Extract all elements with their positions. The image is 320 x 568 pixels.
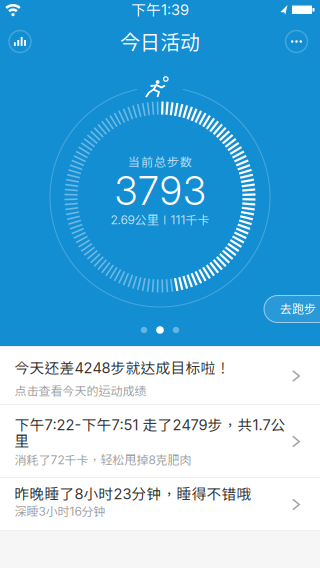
- button[interactable]: 下午7:22-下午7:51 走了2479步，共1.7公: [0, 405, 320, 477]
- staticText: 深睡3小时16分钟: [14, 504, 105, 519]
- staticText: 3793: [115, 168, 205, 214]
- button[interactable]: [6, 28, 33, 55]
- staticText: 消耗了72千卡，轻松甩掉8克肥肉: [14, 453, 191, 467]
- button[interactable]: 去跑步: [264, 295, 320, 322]
- staticText: 当前总步数: [128, 155, 192, 169]
- button[interactable]: [283, 28, 310, 55]
- button[interactable]: 昨晚睡了8小时23分钟，睡得不错哦: [0, 478, 320, 530]
- staticText: 2.69公里 111千卡: [110, 213, 209, 227]
- staticText: 今日活动: [120, 30, 200, 53]
- staticText: 里: [14, 433, 29, 449]
- staticText: 下午1:39: [131, 1, 189, 19]
- button[interactable]: 今天还差4248步就达成目标啦！: [0, 347, 320, 404]
- staticText: 下午7:22-下午7:51 走了2479步，共1.7公: [14, 416, 285, 434]
- staticText: 昨晚睡了8小时23分钟，睡得不错哦: [14, 485, 251, 503]
- staticText: 今天还差4248步就达成目标啦！: [14, 359, 230, 377]
- staticText: 点击查看今天的运动成绩: [14, 384, 146, 398]
- staticText: 去跑步: [280, 302, 316, 316]
